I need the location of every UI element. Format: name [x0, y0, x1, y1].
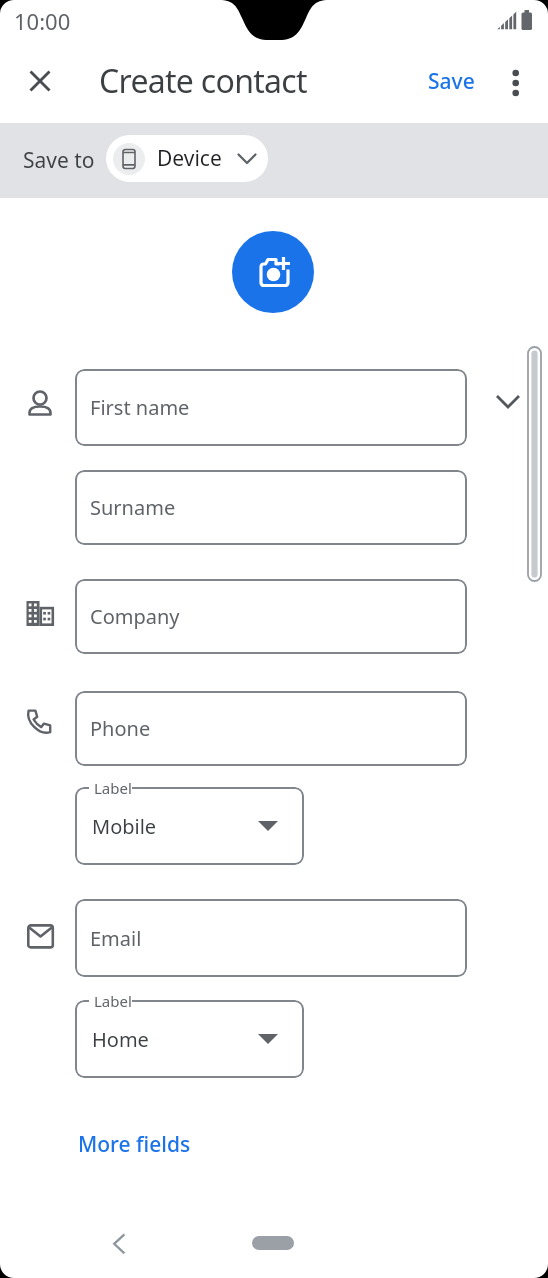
button[interactable]	[18, 59, 62, 103]
staticText: Mobile	[92, 813, 157, 840]
staticText: Email	[90, 925, 142, 952]
staticText: 10:00	[14, 6, 71, 34]
staticText: Device	[157, 144, 222, 173]
button[interactable]	[75, 787, 304, 865]
staticText: More fields	[78, 1130, 191, 1158]
staticText: Label	[94, 778, 132, 798]
button[interactable]	[486, 379, 530, 423]
staticText: Save to	[23, 146, 95, 175]
staticText: Save	[428, 67, 475, 96]
staticText: Phone	[90, 715, 151, 742]
button[interactable]: Email	[75, 899, 467, 977]
staticText: Surname	[90, 494, 176, 521]
button[interactable]: Save	[428, 66, 484, 96]
button[interactable]	[252, 1236, 294, 1250]
button[interactable]	[494, 60, 538, 104]
staticText: Label	[94, 991, 132, 1011]
button[interactable]: Surname	[75, 470, 467, 545]
button[interactable]: Device	[106, 135, 268, 182]
staticText: Home	[92, 1026, 149, 1053]
button[interactable]	[75, 1000, 304, 1078]
button[interactable]	[98, 1222, 142, 1266]
staticText: First name	[90, 394, 190, 421]
button[interactable]: Company	[75, 579, 467, 654]
button[interactable]: First name	[75, 369, 467, 446]
button[interactable]	[232, 231, 314, 313]
staticText: Company	[90, 603, 180, 630]
button[interactable]: More fields	[78, 1130, 208, 1158]
button[interactable]: Phone	[75, 691, 467, 766]
staticText: Create contact	[99, 59, 307, 99]
